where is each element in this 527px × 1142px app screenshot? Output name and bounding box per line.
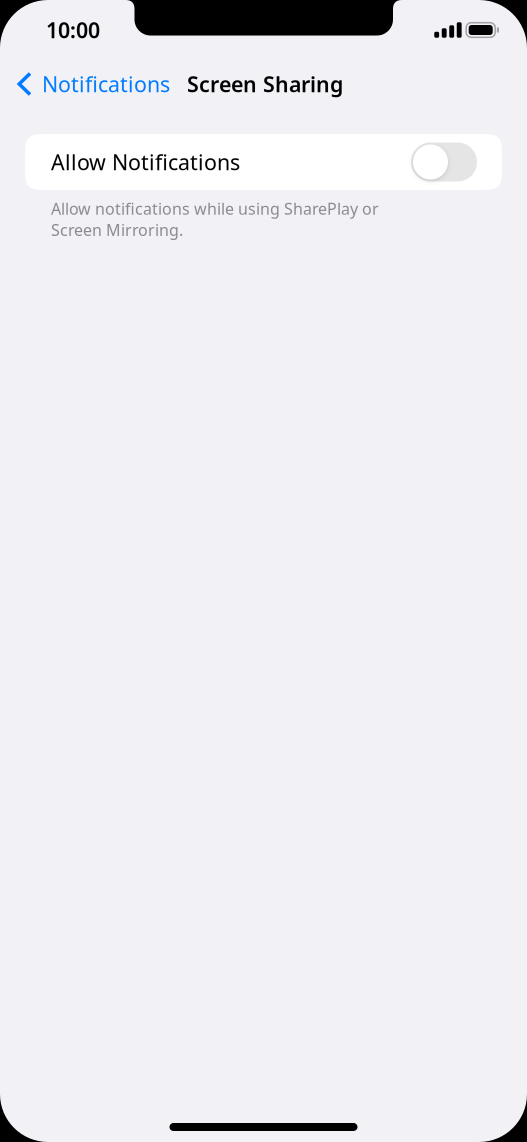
button[interactable]: Allow Notifications (0, 134, 527, 190)
staticText: Notifications (42, 70, 170, 98)
staticText: Allow Notifications (51, 148, 240, 176)
button[interactable]: Notifications (0, 61, 180, 107)
staticText: 10:00 (46, 16, 100, 44)
staticText: Screen Sharing (187, 70, 343, 98)
staticText: Allow notifications while using SharePla… (51, 198, 379, 240)
